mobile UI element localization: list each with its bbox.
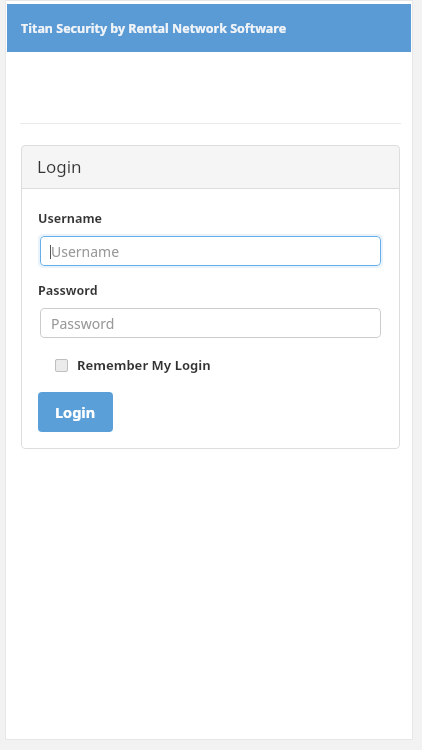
staticText: Username [38,210,103,227]
staticText: Titan Security by Rental Network Softwar… [21,20,287,37]
staticText: Remember My Login [77,356,211,374]
staticText: Password [38,282,98,299]
button[interactable]: Titan Security by Rental Network Softwar… [7,4,411,52]
button[interactable]: Password [40,308,381,338]
button[interactable]: Remember My Login [55,356,211,374]
staticText: Username [51,242,120,261]
staticText: Password [51,314,115,333]
staticText: Login [55,402,96,422]
button[interactable]: Login [38,392,113,432]
button[interactable]: Username [40,236,381,266]
staticText: Login [37,155,82,178]
